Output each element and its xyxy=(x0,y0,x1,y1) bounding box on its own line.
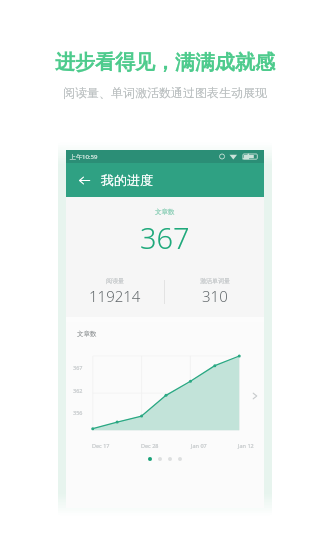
staticText: 367 xyxy=(140,218,190,257)
staticText: 上午10:59 xyxy=(70,153,98,161)
staticText: 362 xyxy=(73,387,83,394)
button[interactable]: 阅读量 xyxy=(66,277,164,306)
staticText: 文章数 xyxy=(77,330,97,338)
button[interactable] xyxy=(168,457,172,461)
staticText: Jan 12 xyxy=(238,442,254,449)
staticText: Jan 07 xyxy=(191,442,207,449)
button[interactable] xyxy=(158,457,162,461)
button[interactable]: Next chart xyxy=(248,389,262,403)
staticText: 阅读量、单词激活数通过图表生动展现 xyxy=(63,85,267,100)
button[interactable]: Back xyxy=(74,170,94,190)
button[interactable] xyxy=(148,457,152,461)
staticText: 进步看得见，满满成就感 xyxy=(55,50,275,75)
staticText: Dec 17 xyxy=(92,442,110,449)
staticText: Dec 28 xyxy=(141,442,159,449)
staticText: 阅读量 xyxy=(106,277,124,285)
staticText: 我的进度 xyxy=(101,172,153,188)
staticText: 文章数 xyxy=(155,208,175,216)
staticText: 激活单词量 xyxy=(200,277,230,285)
staticText: 310 xyxy=(202,286,228,306)
button[interactable]: 激活单词量 xyxy=(165,277,264,306)
staticText: 367 xyxy=(73,364,83,371)
staticText: 356 xyxy=(73,409,83,416)
staticText: 119214 xyxy=(89,286,141,306)
button[interactable] xyxy=(178,457,182,461)
